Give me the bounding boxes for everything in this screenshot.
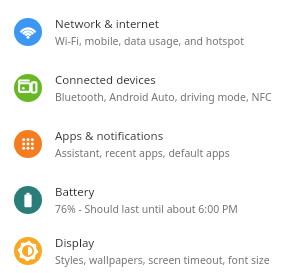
staticText: Battery xyxy=(55,184,95,200)
button[interactable]: Battery xyxy=(0,172,300,228)
staticText: Connected devices xyxy=(55,72,156,88)
staticText: Network & internet xyxy=(55,16,159,32)
button[interactable]: Connected devices xyxy=(0,60,300,116)
other: Connected devices xyxy=(14,74,42,102)
button[interactable]: Apps and notifications xyxy=(0,116,300,172)
staticText: Apps & notifications xyxy=(55,128,164,144)
other: Display xyxy=(14,237,42,265)
other: Network and internet xyxy=(14,18,42,46)
staticText: Bluetooth, Android Auto, driving mode, N… xyxy=(55,90,272,104)
staticText: Styles, wallpapers, screen timeout, font… xyxy=(55,253,270,267)
other: Battery xyxy=(14,186,42,214)
other: Apps and notifications xyxy=(14,130,42,158)
staticText: Assistant, recent apps, default apps xyxy=(55,146,230,160)
staticText: Display xyxy=(55,235,95,251)
staticText: 76% - Should last until about 6:00 PM xyxy=(55,202,238,216)
button[interactable]: Network and internet xyxy=(0,4,300,60)
staticText: Wi-Fi, mobile, data usage, and hotspot xyxy=(55,34,244,48)
button[interactable]: Display xyxy=(0,228,300,273)
